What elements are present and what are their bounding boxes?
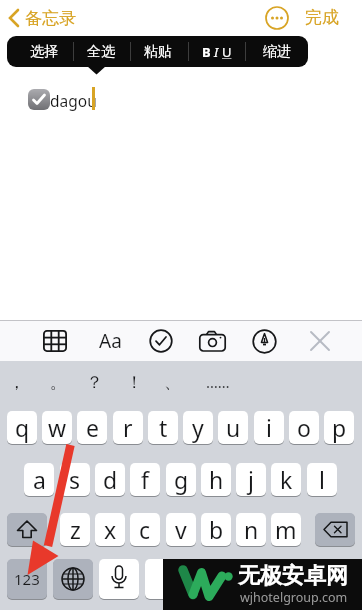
staticText: p — [332, 412, 347, 443]
staticText: g — [174, 464, 189, 495]
button[interactable]: v — [166, 513, 196, 546]
button[interactable] — [300, 322, 340, 360]
staticText: f — [141, 464, 149, 495]
staticText: Aa — [99, 328, 122, 354]
button[interactable]: m — [271, 513, 301, 546]
button[interactable] — [4, 4, 94, 32]
staticText: ， — [8, 372, 25, 393]
button[interactable]: Aa — [90, 322, 130, 360]
staticText: w — [48, 412, 67, 443]
button[interactable] — [35, 322, 75, 360]
button[interactable]: B — [187, 36, 247, 67]
staticText: 完成 — [305, 7, 339, 28]
staticText: ？ — [86, 372, 103, 393]
staticText: 123 — [14, 569, 40, 589]
staticText: m — [275, 514, 297, 545]
button[interactable]: o — [289, 411, 319, 444]
staticText: 、 — [164, 372, 181, 393]
button[interactable]: 粘贴 — [128, 36, 188, 67]
staticText: U — [222, 43, 232, 61]
button[interactable]: i — [254, 411, 284, 444]
staticText: y — [192, 412, 204, 443]
staticText: dagou — [50, 90, 97, 111]
button[interactable] — [53, 559, 93, 599]
button[interactable]: e — [77, 411, 107, 444]
button[interactable]: z — [60, 513, 90, 546]
staticText: wjhotelgroup.com — [240, 589, 348, 606]
button[interactable]: y — [183, 411, 213, 444]
button[interactable]: 选择 — [14, 36, 74, 67]
button[interactable] — [263, 4, 291, 32]
staticText: u — [226, 412, 241, 443]
button[interactable]: l — [307, 463, 337, 496]
button[interactable]: w — [42, 411, 72, 444]
button[interactable] — [141, 322, 181, 360]
staticText: z — [70, 514, 81, 545]
staticText: c — [139, 514, 151, 545]
button[interactable]: a — [24, 463, 54, 496]
staticText: b — [209, 514, 224, 545]
button[interactable]: j — [236, 463, 266, 496]
staticText: 缩进 — [263, 43, 291, 61]
staticText: I — [214, 43, 219, 61]
button[interactable] — [28, 89, 50, 110]
button[interactable]: p — [324, 411, 354, 444]
button[interactable]: t — [148, 411, 178, 444]
staticText: h — [209, 464, 224, 495]
staticText: q — [15, 412, 30, 443]
button[interactable]: k — [271, 463, 301, 496]
button[interactable]: h — [201, 463, 231, 496]
staticText: 备忘录 — [25, 8, 76, 29]
button[interactable]: q — [7, 411, 37, 444]
button[interactable] — [192, 322, 232, 360]
button[interactable]: r — [113, 411, 143, 444]
button[interactable]: x — [95, 513, 125, 546]
staticText: 。 — [50, 372, 67, 393]
staticText: ！ — [126, 372, 143, 393]
button[interactable]: 完成 — [300, 4, 356, 30]
staticText: n — [244, 514, 259, 545]
staticText: l — [319, 464, 325, 495]
button[interactable]: 123 — [7, 559, 47, 599]
button[interactable]: c — [130, 513, 160, 546]
button[interactable]: 缩进 — [247, 36, 307, 67]
button[interactable]: f — [130, 463, 160, 496]
staticText: o — [297, 412, 311, 443]
staticText: 粘贴 — [144, 43, 172, 61]
button[interactable]: n — [236, 513, 266, 546]
button[interactable] — [244, 322, 284, 360]
staticText: 全选 — [87, 43, 115, 61]
button[interactable] — [7, 513, 47, 546]
staticText: …… — [206, 372, 230, 392]
button[interactable] — [315, 513, 355, 546]
staticText: v — [175, 514, 187, 545]
button[interactable] — [99, 559, 139, 599]
button[interactable]: s — [60, 463, 90, 496]
staticText: r — [123, 412, 133, 443]
button[interactable]: u — [218, 411, 248, 444]
button[interactable] — [145, 559, 257, 599]
staticText: x — [104, 514, 117, 545]
staticText: 选择 — [30, 43, 58, 61]
button[interactable]: b — [201, 513, 231, 546]
staticText: B — [202, 43, 211, 61]
staticText: t — [159, 412, 168, 443]
staticText: s — [69, 464, 81, 495]
staticText: k — [280, 464, 293, 495]
button[interactable]: g — [166, 463, 196, 496]
staticText: j — [248, 464, 254, 495]
button[interactable]: d — [95, 463, 125, 496]
staticText: e — [86, 412, 99, 443]
staticText: 无极安卓网 — [238, 562, 348, 590]
staticText: a — [33, 464, 46, 495]
staticText: i — [266, 412, 272, 443]
staticText: d — [103, 464, 118, 495]
button[interactable]: 全选 — [71, 36, 131, 67]
